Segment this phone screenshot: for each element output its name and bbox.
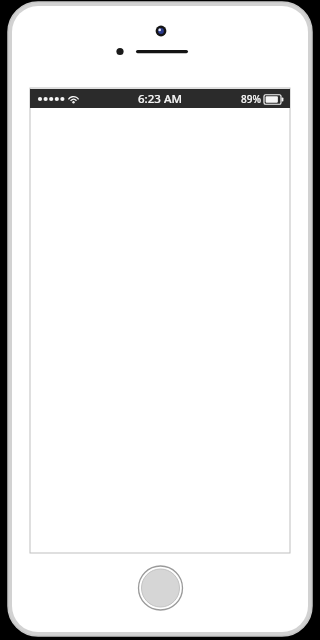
other: Battery 89 percent xyxy=(264,94,284,105)
staticText: 89% xyxy=(241,92,261,106)
button[interactable]: Home xyxy=(138,566,183,611)
staticText: 6:23 AM xyxy=(138,91,182,107)
button[interactable]: Signal strength and Wi-Fi xyxy=(30,89,290,108)
other: Signal strength and Wi-Fi xyxy=(37,93,77,105)
